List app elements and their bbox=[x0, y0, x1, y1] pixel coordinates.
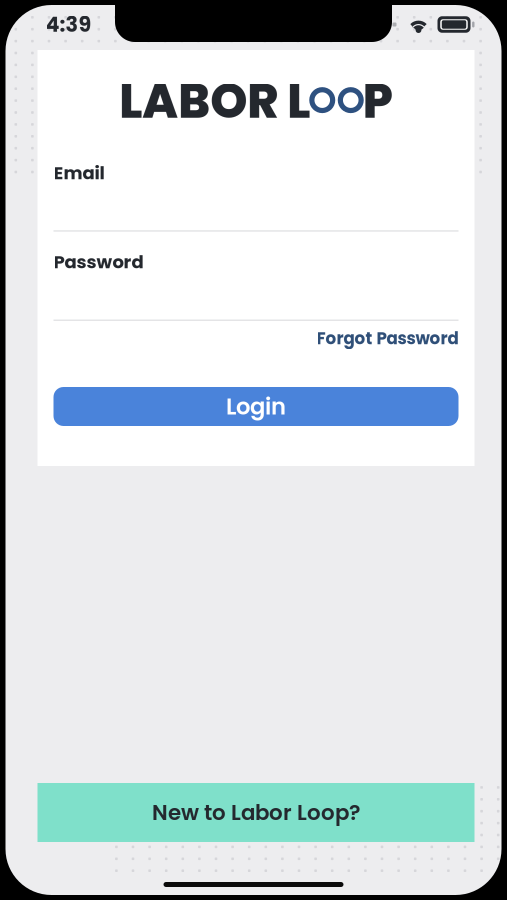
staticText: P bbox=[363, 68, 393, 134]
button[interactable]: New to Labor Loop? bbox=[5, 783, 501, 842]
button[interactable]: Login bbox=[53, 387, 458, 426]
button[interactable]: Forgot Password bbox=[316, 327, 458, 350]
staticText: 4:39 bbox=[45, 10, 91, 39]
staticText: Password bbox=[53, 249, 143, 275]
staticText: Login bbox=[226, 391, 286, 422]
staticText: LABOR L bbox=[119, 68, 310, 134]
staticText: New to Labor Loop? bbox=[152, 798, 360, 827]
staticText: Forgot Password bbox=[316, 327, 458, 350]
staticText: Email bbox=[53, 160, 104, 185]
